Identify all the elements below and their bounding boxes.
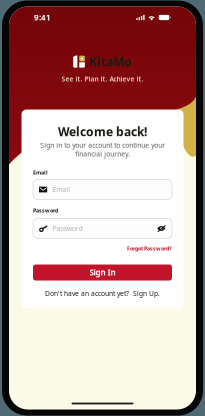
staticText: Forgot Password? — [127, 245, 172, 252]
staticText: Don't have an account yet? Sign Up. — [45, 289, 160, 298]
staticText: Welcome back! — [58, 123, 147, 139]
staticText: 9:41 — [34, 12, 51, 23]
staticText: Password — [53, 224, 83, 233]
button[interactable]: Show password — [157, 225, 166, 232]
staticText: See it. Plan it. Achieve it. — [61, 74, 143, 83]
button[interactable]: Sign In — [33, 264, 172, 280]
staticText: KitaMo — [89, 54, 132, 69]
button[interactable]: Don't have an account yet? Sign Up. — [45, 289, 160, 298]
staticText: Email — [52, 185, 70, 194]
staticText: Email — [33, 169, 48, 176]
staticText: Sign in to your account to continue your… — [40, 141, 165, 158]
staticText: Sign In — [89, 267, 115, 278]
button[interactable]: Forgot Password? — [33, 244, 172, 252]
staticText: Password — [33, 207, 58, 214]
